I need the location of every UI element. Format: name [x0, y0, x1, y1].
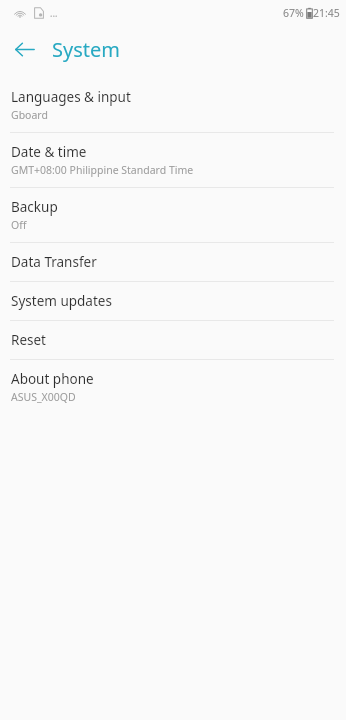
staticText: Data Transfer [11, 253, 97, 271]
button[interactable]: Data Transfer [0, 243, 346, 281]
staticText: Reset [11, 331, 46, 349]
staticText: System updates [11, 292, 112, 310]
button[interactable]: Languages & input [0, 78, 346, 132]
staticText: ... [50, 7, 58, 19]
button[interactable]: Back [6, 31, 42, 67]
button[interactable]: Date & time [0, 133, 346, 187]
button[interactable]: Reset [0, 321, 346, 359]
staticText: Languages & input [11, 88, 131, 106]
staticText: ASUS_X00QD [11, 390, 76, 404]
staticText: About phone [11, 370, 94, 388]
staticText: Date & time [11, 143, 87, 161]
staticText: Gboard [11, 108, 48, 122]
staticText: 21:45 [313, 6, 340, 20]
button[interactable]: System updates [0, 282, 346, 320]
staticText: Backup [11, 198, 58, 216]
button[interactable]: About phone [0, 360, 346, 414]
staticText: 67% [283, 6, 304, 20]
button[interactable]: Backup [0, 188, 346, 242]
staticText: GMT+08:00 Philippine Standard Time [11, 163, 194, 177]
staticText: Off [11, 218, 27, 232]
staticText: System [52, 36, 120, 63]
